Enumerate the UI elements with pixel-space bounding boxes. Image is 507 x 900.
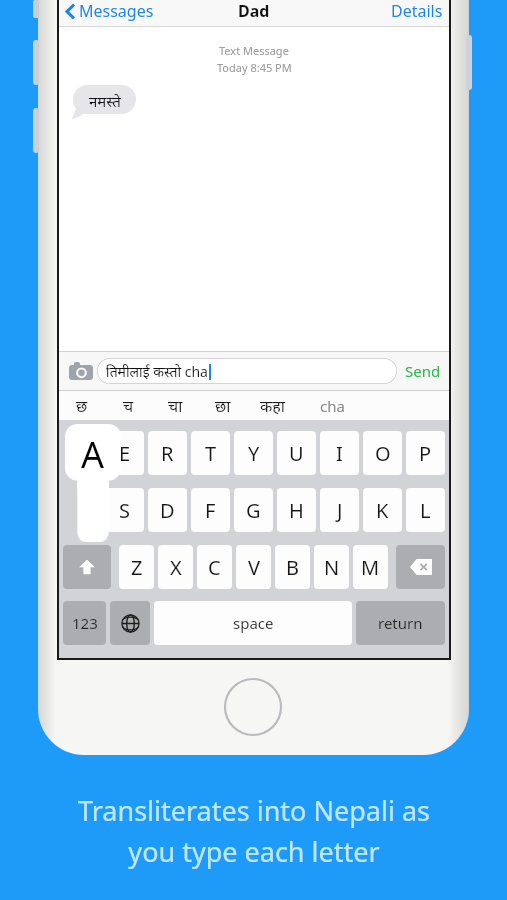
- button[interactable]: Messages: [65, 0, 154, 22]
- staticText: U: [289, 440, 304, 467]
- button[interactable]: चा: [152, 391, 199, 420]
- staticText: Transliterates into Nepali as: [78, 792, 430, 829]
- button[interactable]: V: [236, 545, 271, 589]
- staticText: I: [336, 440, 343, 467]
- staticText: Z: [131, 554, 143, 581]
- staticText: A: [81, 430, 105, 479]
- button[interactable]: कहा: [246, 391, 298, 420]
- staticText: cha: [320, 396, 345, 416]
- button[interactable]: B: [275, 545, 310, 589]
- staticText: you type each letter: [128, 833, 380, 870]
- staticText: च: [123, 395, 134, 417]
- button[interactable]: H: [277, 488, 316, 532]
- staticText: Send: [405, 361, 441, 381]
- staticText: B: [286, 554, 299, 581]
- button[interactable]: Camera: [65, 355, 97, 387]
- staticText: तिमीलाई कस्तो cha: [106, 362, 208, 381]
- button[interactable]: T: [191, 431, 230, 475]
- staticText: चा: [168, 395, 183, 417]
- button[interactable]: U: [277, 431, 316, 475]
- button[interactable]: K: [363, 488, 402, 532]
- button[interactable]: Send: [397, 361, 449, 381]
- button[interactable]: तिमीलाई कस्तो cha: [97, 358, 397, 384]
- button[interactable]: Details: [391, 0, 449, 22]
- button[interactable]: X: [158, 545, 193, 589]
- staticText: F: [205, 497, 216, 524]
- staticText: 123: [72, 613, 98, 633]
- button[interactable]: P: [406, 431, 445, 475]
- staticText: Messages: [79, 0, 154, 22]
- staticText: D: [160, 497, 175, 524]
- staticText: T: [205, 440, 217, 467]
- staticText: C: [208, 554, 221, 581]
- staticText: R: [161, 440, 174, 467]
- button[interactable]: च: [105, 391, 152, 420]
- staticText: G: [246, 497, 261, 524]
- button[interactable]: Y: [234, 431, 273, 475]
- staticText: छ: [76, 395, 88, 417]
- staticText: Text Message: [219, 43, 289, 58]
- button[interactable]: J: [320, 488, 359, 532]
- staticText: M: [361, 554, 380, 581]
- button[interactable]: I: [320, 431, 359, 475]
- staticText: X: [170, 554, 182, 581]
- staticText: Today 8:45 PM: [217, 60, 292, 75]
- button[interactable]: Switch keyboard: [110, 601, 150, 645]
- staticText: O: [375, 440, 391, 467]
- staticText: J: [337, 497, 343, 524]
- button[interactable]: छा: [199, 391, 246, 420]
- button[interactable]: 123: [63, 601, 106, 645]
- staticText: P: [419, 440, 432, 467]
- button[interactable]: return: [356, 601, 445, 645]
- button[interactable]: cha: [298, 391, 366, 420]
- button[interactable]: L: [406, 488, 445, 532]
- staticText: Dad: [238, 0, 270, 22]
- button[interactable]: D: [148, 488, 187, 532]
- staticText: छा: [215, 395, 231, 417]
- staticText: नमस्ते: [89, 91, 121, 111]
- button[interactable]: R: [148, 431, 187, 475]
- staticText: V: [248, 554, 260, 581]
- staticText: return: [378, 613, 423, 633]
- staticText: space: [233, 613, 274, 633]
- staticText: E: [119, 440, 131, 467]
- button[interactable]: S: [105, 488, 144, 532]
- staticText: S: [119, 497, 130, 524]
- button[interactable]: छ: [59, 391, 105, 420]
- staticText: N: [324, 554, 340, 581]
- button[interactable]: F: [191, 488, 230, 532]
- button[interactable]: Delete: [396, 545, 445, 589]
- staticText: K: [376, 497, 389, 524]
- staticText: Y: [248, 440, 260, 467]
- button[interactable]: E: [105, 431, 144, 475]
- button[interactable]: Z: [119, 545, 154, 589]
- button[interactable]: N: [314, 545, 349, 589]
- staticText: L: [420, 497, 431, 524]
- button[interactable]: O: [363, 431, 402, 475]
- button[interactable]: A: [65, 424, 121, 542]
- button[interactable]: Shift: [63, 545, 111, 589]
- button[interactable]: Home: [222, 676, 284, 738]
- staticText: कहा: [260, 395, 285, 417]
- button[interactable]: space: [154, 601, 352, 645]
- button[interactable]: C: [197, 545, 232, 589]
- button[interactable]: M: [353, 545, 388, 589]
- button[interactable]: G: [234, 488, 273, 532]
- staticText: H: [289, 497, 304, 524]
